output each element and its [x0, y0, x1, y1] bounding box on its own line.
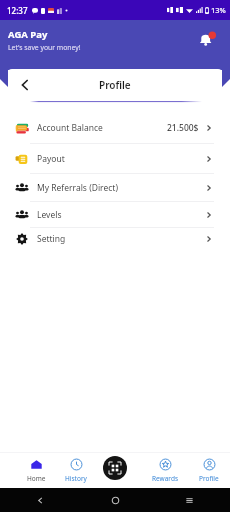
staticText: 21.500$: [167, 122, 199, 134]
staticText: Levels: [37, 209, 62, 221]
staticText: 13%: [211, 5, 226, 15]
staticText: Home: [27, 474, 46, 483]
staticText: History: [65, 474, 87, 483]
staticText: 12:37: [7, 5, 28, 16]
button[interactable]: Account Balance: [8, 113, 222, 143]
button[interactable]: Profile: [188, 452, 230, 488]
button[interactable]: Levels: [8, 202, 222, 227]
staticText: Profile: [199, 474, 219, 483]
staticText: Let's save your money!: [8, 43, 81, 52]
button[interactable]: Notifications: [196, 29, 218, 51]
button[interactable]: Payout: [8, 144, 222, 173]
staticText: AGA Pay: [8, 28, 48, 41]
staticText: My Referrals (Direct): [37, 182, 118, 194]
button[interactable]: Home: [15, 452, 57, 488]
staticText: Profile: [99, 78, 131, 92]
button[interactable]: Rewards: [144, 452, 186, 488]
button[interactable]: History: [55, 452, 97, 488]
staticText: Rewards: [152, 474, 179, 483]
staticText: Account Balance: [37, 122, 103, 134]
button[interactable]: Setting: [8, 228, 222, 249]
staticText: Payout: [37, 153, 65, 165]
button[interactable]: My Referrals (Direct): [8, 174, 222, 201]
button[interactable]: Back: [16, 76, 34, 94]
staticText: Setting: [37, 233, 66, 245]
button[interactable]: Scan QR code: [103, 456, 127, 480]
